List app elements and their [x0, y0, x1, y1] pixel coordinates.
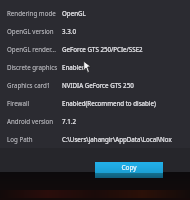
staticText: OpenGL render... [7, 45, 56, 53]
staticText: OpenGL [62, 9, 86, 17]
staticText: 3.3.0 [62, 27, 76, 35]
button[interactable]: Copy [95, 162, 163, 178]
staticText: Discrete graphics [7, 63, 58, 71]
staticText: Graphics card1 [7, 81, 51, 89]
staticText: OpenGL version [7, 27, 54, 35]
staticText: Copy [121, 163, 137, 172]
staticText: GeForce GTS 250/PCIe/SSE2 [62, 45, 143, 53]
other: Pointer [83, 61, 92, 73]
staticText: Enabled(Recommend to disable) [62, 99, 156, 107]
staticText: C:\Users\Jahangir\AppData\Local\Nox [62, 135, 172, 143]
staticText: 7.1.2 [62, 117, 76, 125]
staticText: NVIDIA GeForce GTS 250 [62, 81, 134, 89]
staticText: Log Path [7, 135, 33, 143]
staticText: Enabled [62, 63, 86, 71]
staticText: Rendering mode [7, 9, 56, 17]
staticText: Android version [7, 117, 54, 125]
staticText: Firewall [7, 99, 30, 107]
